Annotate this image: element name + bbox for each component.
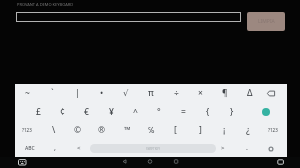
- staticText: .: [246, 143, 248, 153]
- staticText: {: [206, 106, 210, 118]
- button[interactable]: [118, 157, 131, 168]
- button[interactable]: •: [91, 85, 113, 101]
- button[interactable]: [274, 157, 288, 168]
- staticText: ?123: [268, 127, 278, 133]
- staticText: ~: [25, 87, 30, 99]
- staticText: π: [148, 87, 154, 99]
- staticText: >: [221, 144, 225, 152]
- staticText: ?123: [22, 127, 32, 133]
- staticText: `: [51, 87, 54, 99]
- staticText: √: [123, 88, 129, 98]
- button[interactable]: ©: [67, 122, 89, 138]
- button[interactable]: °: [148, 104, 170, 120]
- staticText: ®: [98, 124, 106, 136]
- staticText: ,: [54, 143, 56, 153]
- staticText: ™: [124, 124, 131, 136]
- button[interactable]: ¿: [237, 122, 259, 138]
- button[interactable]: }: [221, 104, 243, 120]
- button[interactable]: Δ: [239, 85, 261, 101]
- button[interactable]: £: [27, 104, 49, 120]
- button[interactable]: π: [140, 85, 162, 101]
- button[interactable]: ?123: [16, 122, 38, 138]
- button[interactable]: LIMPIA: [247, 12, 285, 31]
- button[interactable]: ABC: [19, 140, 41, 156]
- staticText: ÷: [174, 87, 179, 99]
- button[interactable]: ¥: [100, 104, 122, 120]
- staticText: \: [52, 124, 56, 136]
- button[interactable]: [263, 85, 285, 101]
- button[interactable]: ℅: [140, 122, 162, 138]
- button[interactable]: ¢: [51, 104, 73, 120]
- button[interactable]: =: [172, 104, 194, 120]
- button[interactable]: [143, 157, 157, 168]
- button[interactable]: >: [212, 140, 234, 156]
- staticText: SWIFTKEY: [146, 147, 160, 151]
- button[interactable]: <: [68, 140, 90, 156]
- staticText: ¶: [222, 87, 228, 99]
- staticText: <: [77, 144, 81, 152]
- staticText: LIMPIA: [258, 18, 275, 25]
- button[interactable]: ™: [116, 122, 138, 138]
- button[interactable]: ]: [189, 122, 211, 138]
- staticText: Δ: [247, 87, 253, 99]
- button[interactable]: [170, 157, 183, 168]
- button[interactable]: .: [236, 140, 258, 156]
- staticText: £: [36, 106, 41, 118]
- button[interactable]: €: [75, 104, 97, 120]
- staticText: [: [174, 124, 177, 136]
- staticText: ¡: [223, 124, 226, 136]
- staticText: ¿: [246, 124, 250, 136]
- staticText: =: [181, 106, 186, 118]
- staticText: °: [157, 106, 161, 118]
- staticText: ]: [199, 124, 202, 136]
- button[interactable]: [: [164, 122, 186, 138]
- staticText: |: [75, 87, 80, 99]
- button[interactable]: ~: [16, 85, 38, 101]
- staticText: }: [230, 106, 234, 118]
- staticText: ABC: [25, 145, 35, 152]
- button[interactable]: {: [197, 104, 219, 120]
- button[interactable]: [16, 12, 241, 22]
- button[interactable]: [260, 140, 282, 156]
- button[interactable]: \: [43, 122, 65, 138]
- staticText: €: [84, 106, 89, 118]
- button[interactable]: SWIFTKEY: [90, 144, 216, 153]
- button[interactable]: ×: [189, 85, 211, 101]
- button[interactable]: ®: [91, 122, 113, 138]
- button[interactable]: ÷: [165, 85, 187, 101]
- staticText: •: [100, 87, 104, 99]
- button[interactable]: [15, 157, 29, 168]
- button[interactable]: √: [115, 85, 137, 101]
- staticText: PROVANT A DEMO KEYBOARD: [17, 2, 74, 7]
- staticText: ¢: [60, 106, 65, 118]
- button[interactable]: ?123: [262, 122, 284, 138]
- button[interactable]: [262, 108, 270, 116]
- staticText: ¥: [109, 106, 114, 118]
- staticText: ×: [198, 87, 203, 99]
- button[interactable]: `: [41, 85, 63, 101]
- staticText: ℅: [148, 124, 155, 136]
- staticText: ©: [74, 124, 82, 136]
- button[interactable]: ^: [124, 104, 146, 120]
- button[interactable]: ,: [44, 140, 66, 156]
- button[interactable]: |: [66, 85, 88, 101]
- button[interactable]: ¡: [213, 122, 235, 138]
- staticText: ^: [133, 106, 138, 118]
- button[interactable]: ¶: [214, 85, 236, 101]
